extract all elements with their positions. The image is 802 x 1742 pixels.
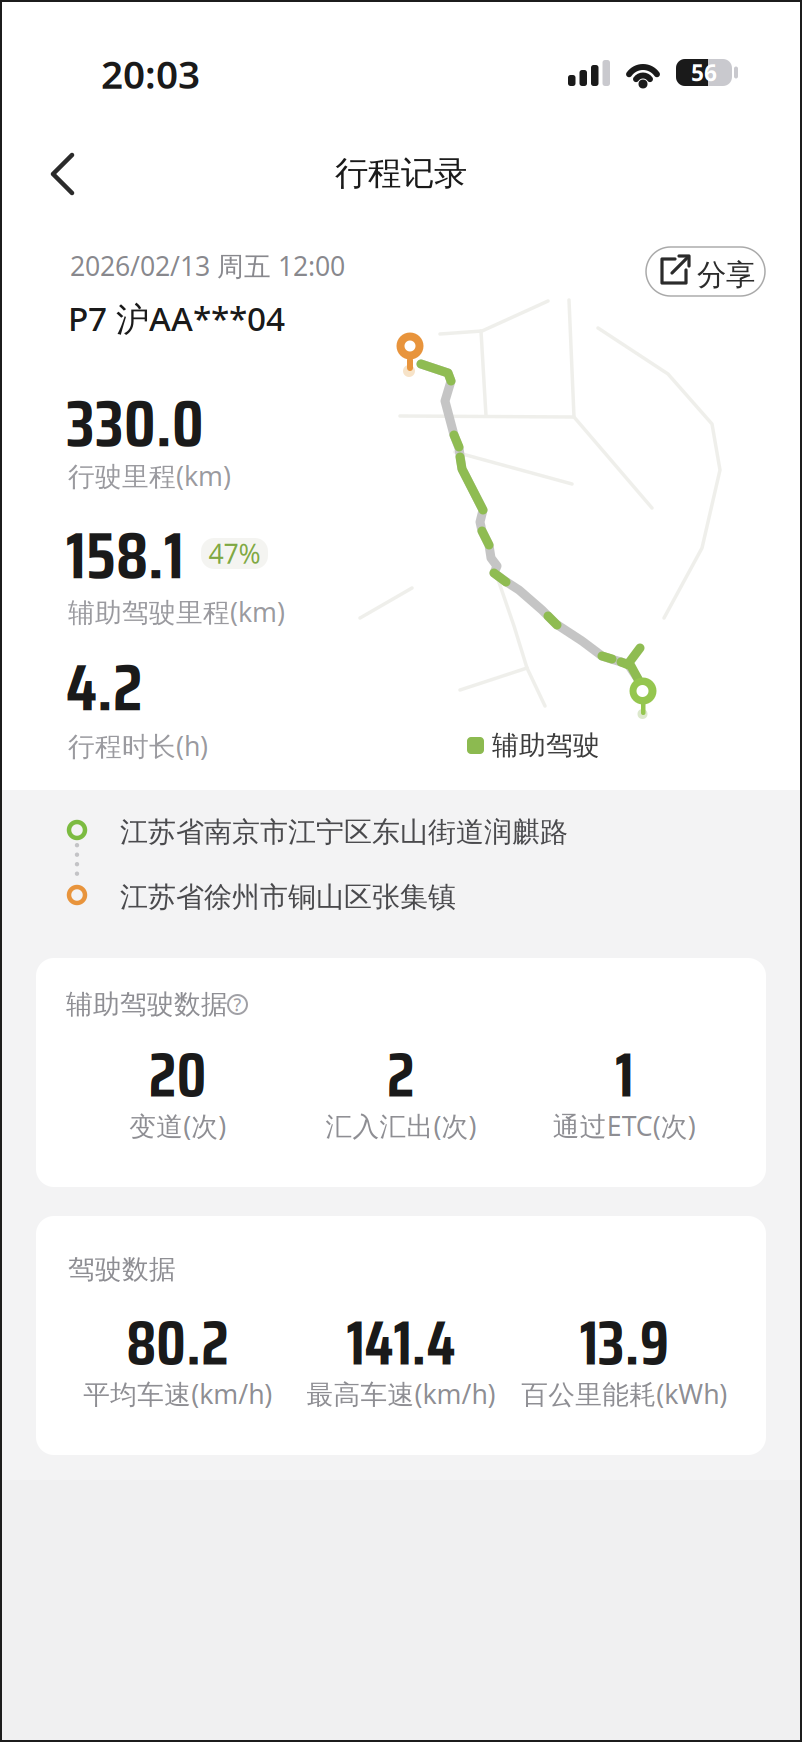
staticText: 平均车速(km/h): [83, 1376, 272, 1411]
staticText: 辅助驾驶里程(km): [68, 594, 285, 629]
staticText: 2: [387, 1027, 415, 1123]
staticText: 2026/02/13 周五 12:00: [70, 248, 345, 283]
staticText: 行程记录: [335, 153, 467, 194]
staticText: 行程时长(h): [68, 728, 208, 763]
staticText: 330.0: [66, 372, 204, 475]
button[interactable]: 分享: [646, 247, 765, 296]
staticText: 158.1: [66, 504, 184, 607]
staticText: 20: [149, 1027, 207, 1123]
staticText: 百公里能耗(kWh): [521, 1376, 727, 1411]
staticText: 1: [615, 1027, 633, 1123]
staticText: 江苏省徐州市铜山区张集镇: [120, 880, 456, 914]
staticText: 江苏省南京市江宁区东山街道润麒路: [120, 815, 568, 849]
staticText: 辅助驾驶数据: [66, 988, 228, 1021]
staticText: 80.2: [126, 1295, 229, 1391]
button[interactable]: 返回: [50, 153, 75, 196]
staticText: 驾驶数据: [68, 1253, 176, 1286]
staticText: 4.2: [66, 636, 142, 739]
staticText: 行驶里程(km): [68, 458, 231, 493]
staticText: 47%: [208, 536, 260, 571]
staticText: 辅助驾驶: [492, 729, 600, 762]
staticText: 最高车速(km/h): [306, 1376, 495, 1411]
staticText: 141.4: [346, 1295, 455, 1391]
staticText: 汇入汇出(次): [325, 1108, 476, 1143]
button[interactable]: 辅助驾驶数据说明: [227, 994, 248, 1015]
staticText: ?: [233, 993, 241, 1016]
staticText: 变道(次): [129, 1108, 226, 1143]
staticText: 通过ETC(次): [553, 1108, 696, 1143]
staticText: 13.9: [580, 1295, 669, 1391]
staticText: P7 沪AA***04: [68, 296, 285, 340]
staticText: 分享: [697, 257, 755, 293]
staticText: 56: [691, 57, 717, 87]
staticText: 20:03: [101, 48, 200, 99]
